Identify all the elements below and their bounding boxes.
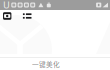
button[interactable]: Capture <box>1 11 13 21</box>
button[interactable]: List <box>21 12 33 20</box>
staticText: 一键美化 <box>32 59 60 69</box>
staticText: U <box>3 0 10 11</box>
